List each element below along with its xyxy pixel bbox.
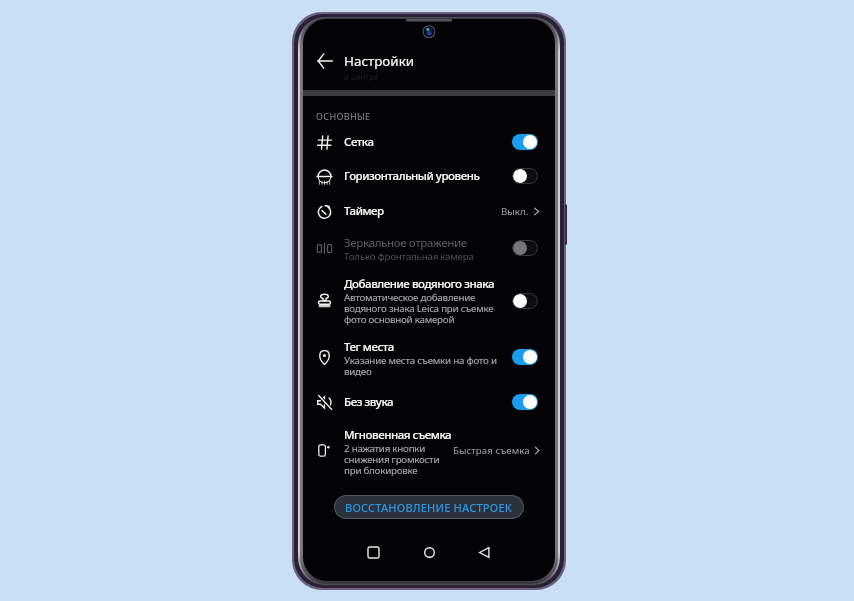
button[interactable]: Без звука (303, 389, 555, 414)
staticText: Сетка (344, 134, 374, 150)
staticText: Только фронтальная камера (344, 250, 474, 263)
button[interactable]: Back (311, 47, 339, 75)
staticText: Мгновенная съемка (344, 427, 452, 443)
staticText: 2 нажатия кнопки снижения громкости при … (344, 442, 440, 477)
button[interactable]: Home (416, 539, 442, 565)
button[interactable]: Toggle (512, 134, 538, 150)
button[interactable]: Recents (360, 539, 386, 565)
staticText: Горизонтальный уровень (344, 168, 480, 184)
staticText: Таймер (344, 203, 384, 219)
button[interactable]: Добавление водяного знака (303, 271, 555, 330)
button[interactable]: Горизонтальный уровень (303, 163, 555, 188)
button[interactable]: Тег места (303, 334, 555, 382)
staticText: Указание места съемки на фото и видео (344, 354, 497, 378)
staticText: Без звука (344, 394, 394, 410)
staticText: ОСНОВНЫЕ (316, 110, 371, 122)
staticText: Добавление водяного знака (344, 276, 495, 292)
staticText: Настройки (344, 52, 415, 70)
button[interactable]: Toggle (512, 240, 538, 256)
staticText: ВОССТАНОВЛЕНИЕ НАСТРОЕК (345, 500, 513, 515)
staticText: Зеркальное отражение (344, 235, 467, 251)
staticText: и центре (344, 71, 379, 82)
button[interactable]: Сетка (303, 129, 555, 154)
staticText: Выкл. (501, 205, 529, 218)
button[interactable]: ВОССТАНОВЛЕНИЕ НАСТРОЕК (334, 495, 524, 519)
button[interactable]: Back (471, 539, 497, 565)
button[interactable]: Мгновенная съемка (303, 422, 555, 481)
staticText: Автоматическое добавление водяного знака… (344, 291, 494, 326)
button[interactable]: Toggle (512, 394, 538, 410)
staticText: Быстрая съемка (453, 444, 530, 457)
button[interactable]: Toggle (512, 349, 538, 365)
button[interactable]: Toggle (512, 168, 538, 184)
button[interactable]: Таймер (303, 198, 555, 223)
button[interactable]: Toggle (512, 293, 538, 309)
staticText: Тег места (344, 339, 394, 355)
button[interactable]: Зеркальное отражение (303, 230, 555, 266)
